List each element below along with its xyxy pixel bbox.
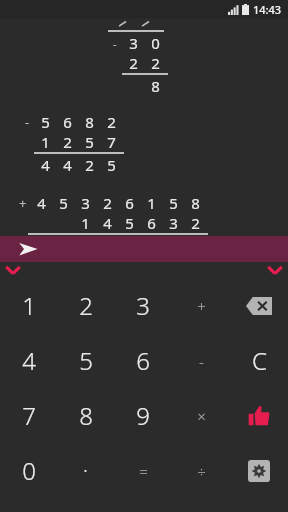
staticText: × <box>197 406 206 426</box>
staticText: 1 <box>147 193 156 213</box>
staticText: 2 <box>85 155 94 175</box>
button[interactable]: Next <box>262 262 288 278</box>
staticText: 2 <box>103 193 112 213</box>
staticText: ÷ <box>197 461 206 481</box>
staticText: · <box>83 457 88 484</box>
staticText: + <box>197 296 206 316</box>
staticText: 4 <box>22 344 36 377</box>
button[interactable]: Settings <box>230 443 288 498</box>
staticText: 6 <box>136 344 150 377</box>
staticText: 5 <box>41 112 50 132</box>
button[interactable]: 1 <box>0 278 57 333</box>
staticText: 1 <box>41 132 50 152</box>
staticText: = <box>139 461 148 481</box>
staticText: 7 <box>22 399 36 432</box>
button[interactable]: 9 <box>114 388 172 443</box>
staticText: 4 <box>63 155 72 175</box>
staticText: 2 <box>191 213 200 233</box>
staticText: 3 <box>169 213 178 233</box>
button[interactable]: - <box>172 333 230 388</box>
staticText: - <box>199 351 204 371</box>
staticText: 5 <box>107 155 116 175</box>
button[interactable]: 5 <box>57 333 114 388</box>
button[interactable]: 0 <box>0 443 57 498</box>
staticText: 5 <box>169 193 178 213</box>
staticText: 3 <box>81 193 90 213</box>
button[interactable]: + <box>172 278 230 333</box>
staticText: 8 <box>79 399 93 432</box>
button[interactable]: C <box>230 333 288 388</box>
staticText: + <box>19 194 27 212</box>
button[interactable]: Submit answer <box>0 236 288 262</box>
staticText: 2 <box>63 132 72 152</box>
button[interactable]: · <box>57 443 114 498</box>
button[interactable]: Confirm <box>230 388 288 443</box>
staticText: 8 <box>151 76 160 96</box>
button[interactable]: 2 <box>57 278 114 333</box>
button[interactable]: 8 <box>57 388 114 443</box>
staticText: 3 <box>136 289 150 322</box>
staticText: 8 <box>191 193 200 213</box>
staticText: 1 <box>81 213 90 233</box>
staticText: 5 <box>59 193 68 213</box>
staticText: 5 <box>79 344 93 377</box>
staticText: - <box>25 113 30 131</box>
staticText: 2 <box>107 112 116 132</box>
staticText: - <box>113 36 117 51</box>
button[interactable]: 6 <box>114 333 172 388</box>
staticText: 5 <box>125 213 134 233</box>
staticText: 0 <box>22 454 36 487</box>
button[interactable]: × <box>172 388 230 443</box>
button[interactable]: 7 <box>0 388 57 443</box>
staticText: 2 <box>129 53 138 73</box>
button[interactable]: ÷ <box>172 443 230 498</box>
button[interactable]: Backspace <box>230 278 288 333</box>
staticText: 2 <box>151 53 160 73</box>
staticText: 0 <box>151 33 160 53</box>
staticText: 4 <box>37 193 46 213</box>
staticText: 2 <box>79 289 93 322</box>
staticText: 6 <box>63 112 72 132</box>
staticText: 5 <box>85 132 94 152</box>
staticText: 8 <box>85 112 94 132</box>
button[interactable]: Previous <box>0 262 26 278</box>
staticText: 3 <box>129 33 138 53</box>
staticText: 1 <box>22 289 36 322</box>
staticText: 4 <box>103 213 112 233</box>
button[interactable]: 4 <box>0 333 57 388</box>
button[interactable]: 3 <box>114 278 172 333</box>
staticText: 4 <box>41 155 50 175</box>
button[interactable]: = <box>114 443 172 498</box>
staticText: 7 <box>107 132 116 152</box>
staticText: 6 <box>125 193 134 213</box>
staticText: 14:43 <box>253 2 282 17</box>
staticText: 9 <box>136 399 150 432</box>
staticText: C <box>252 344 267 377</box>
staticText: 6 <box>147 213 156 233</box>
